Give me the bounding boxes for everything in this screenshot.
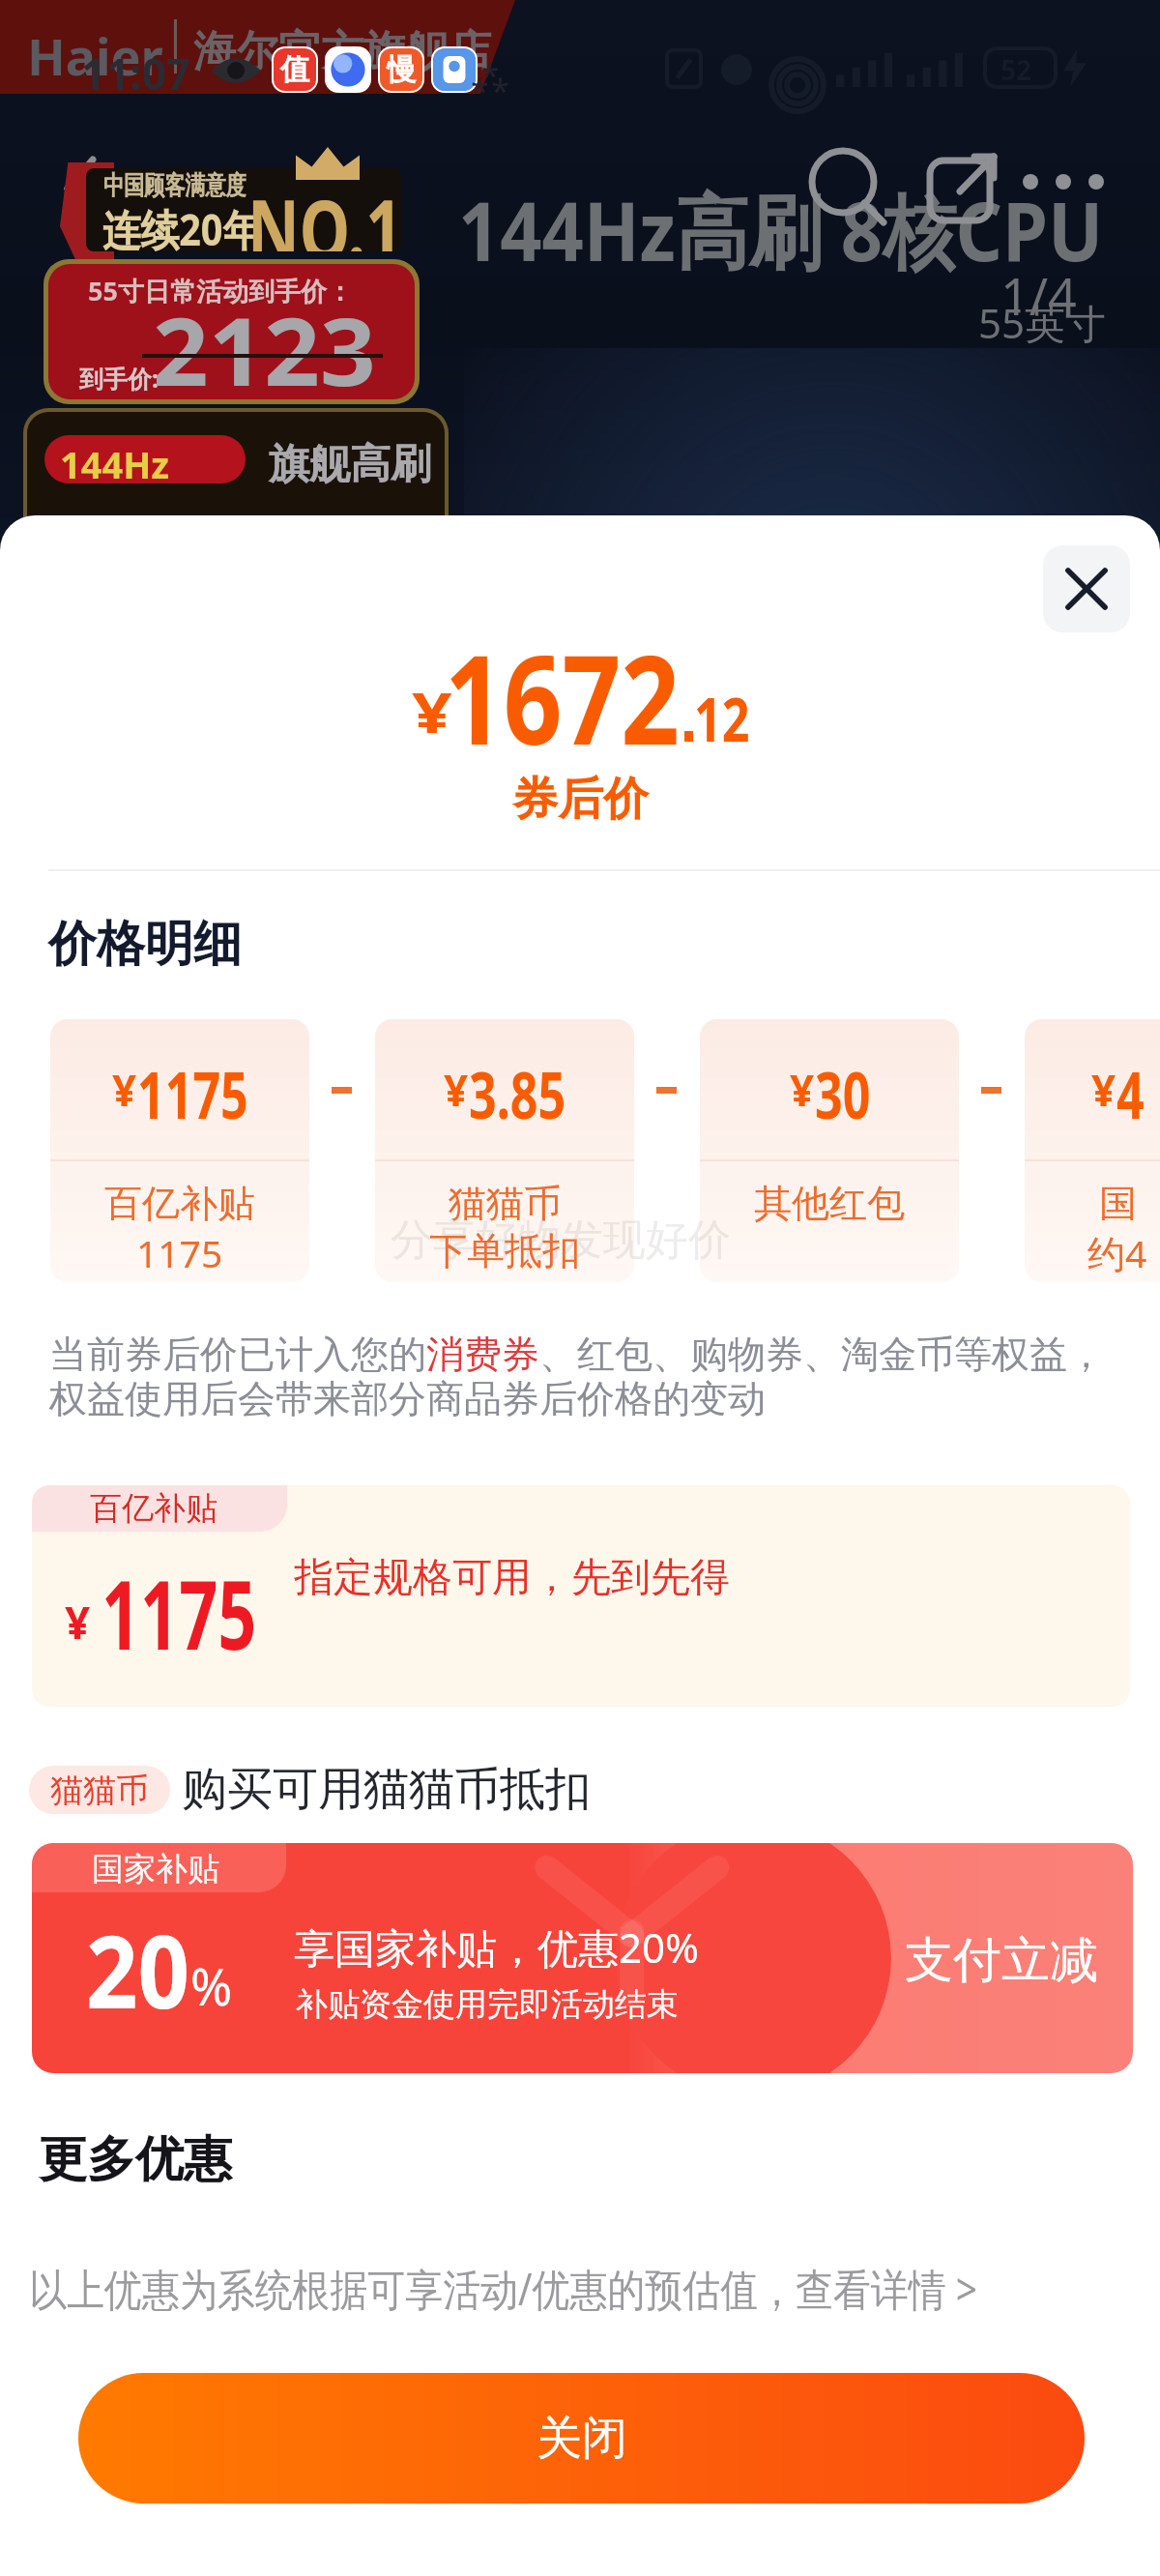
button[interactable]: Search xyxy=(802,145,893,226)
staticText: 到手价: xyxy=(79,362,159,395)
staticText: 猫猫币 xyxy=(449,1180,562,1227)
staticText: 券后价 xyxy=(512,771,649,828)
button[interactable]: Back xyxy=(39,145,126,232)
staticText: 1175 xyxy=(136,1227,223,1278)
staticText: 1/4 xyxy=(1000,261,1077,330)
staticText: Haier xyxy=(27,21,163,90)
staticText: 约4 xyxy=(1087,1227,1147,1278)
button[interactable]: 国家补贴 xyxy=(32,1843,1133,2073)
button[interactable]: Share xyxy=(918,145,1009,226)
staticText: 购买可用猫猫币抵扣 xyxy=(182,1761,591,1818)
button[interactable]: 猫猫币 xyxy=(29,1761,591,1818)
staticText: 猫猫币 xyxy=(50,1770,149,1811)
staticText: 55英寸 xyxy=(978,295,1107,350)
staticText: 国家补贴 xyxy=(92,1849,219,1889)
staticText: 享国家补贴，优惠20% xyxy=(294,1919,699,1975)
staticText: 支付立减 xyxy=(905,1930,1098,1991)
staticText: 3.85 xyxy=(469,1050,566,1137)
staticText: 52 xyxy=(1000,51,1032,88)
staticText: ¥ xyxy=(412,673,453,749)
button[interactable]: 百亿补贴 xyxy=(32,1485,1130,1707)
staticText: 30 xyxy=(815,1050,871,1137)
staticText: 11:07 xyxy=(81,44,191,102)
staticText: 1175 xyxy=(101,1548,257,1677)
staticText: 海尔官方旗舰店 xyxy=(193,25,491,78)
staticText: 55寸日常活动到手价： xyxy=(88,273,353,308)
staticText: 下单抵扣 xyxy=(429,1227,580,1274)
button[interactable]: ¥ xyxy=(375,1019,634,1282)
staticText: 2123 xyxy=(153,286,376,399)
staticText: ¥ xyxy=(444,1061,469,1119)
button[interactable]: ¥ xyxy=(700,1019,959,1282)
staticText: 百亿补贴 xyxy=(104,1180,255,1227)
staticText: 分享好物发现好价 xyxy=(391,1214,731,1267)
staticText: 慢 xyxy=(387,51,416,88)
staticText: 其他红包 xyxy=(754,1180,905,1227)
staticText: ¥ xyxy=(790,1061,815,1119)
staticText: 144Hz xyxy=(60,439,170,483)
staticText: 连续20年 xyxy=(102,200,262,251)
staticText: ¥ xyxy=(1091,1061,1116,1119)
staticText: NO.1 xyxy=(247,171,401,251)
staticText: 4 xyxy=(1116,1050,1144,1137)
staticText: ⁂ xyxy=(472,53,509,98)
staticText: 国 xyxy=(1099,1180,1137,1227)
staticText: 12 xyxy=(694,678,750,759)
staticText: 更多优惠 xyxy=(39,2129,232,2190)
staticText: 补贴资金使用完即活动结束 xyxy=(296,1984,679,2025)
staticText: 中国顾客满意度 xyxy=(103,169,246,202)
staticText: 价格明细 xyxy=(48,914,242,975)
staticText: % xyxy=(190,1951,233,2020)
staticText: 关闭 xyxy=(536,2410,627,2467)
staticText: ¥ xyxy=(65,1592,91,1653)
staticText: 值 xyxy=(280,51,309,88)
staticText: 当前券后价已计入您的消费券、红包、购物券、淘金币等权益， 权益使用后会带来部分商… xyxy=(49,1331,1151,1423)
button[interactable]: ¥ xyxy=(1025,1019,1160,1282)
staticText: 旗舰高刷 xyxy=(269,439,431,490)
staticText: 144Hz高刷 8核CPU xyxy=(458,174,1104,285)
staticText: 百亿补贴 xyxy=(90,1488,217,1529)
staticText: 1672 xyxy=(445,612,680,780)
staticText: ¥ xyxy=(112,1061,137,1119)
staticText: 1175 xyxy=(137,1050,249,1137)
button[interactable]: Close xyxy=(1043,545,1130,632)
button[interactable]: 关闭 xyxy=(78,2373,1085,2503)
button[interactable]: More xyxy=(1015,145,1121,226)
staticText: 20 xyxy=(86,1901,190,2038)
staticText: 指定规格可用，先到先得 xyxy=(294,1553,730,1603)
button[interactable]: ¥ xyxy=(50,1019,309,1282)
staticText: 以上优惠为系统根据可享活动/优惠的预估值，查看详情 > xyxy=(29,2259,978,2318)
